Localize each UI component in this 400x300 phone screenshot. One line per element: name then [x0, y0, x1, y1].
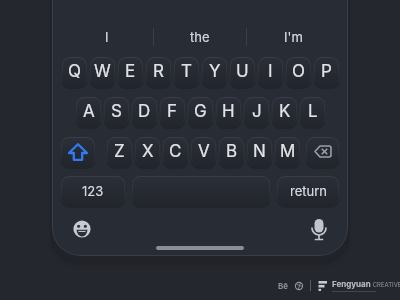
button[interactable]: B — [219, 137, 244, 166]
staticText: G — [194, 101, 207, 122]
staticText: Y — [209, 61, 221, 82]
button[interactable]: J — [244, 97, 269, 126]
staticText: P — [321, 61, 332, 82]
button[interactable] — [306, 137, 339, 166]
staticText: N — [253, 141, 266, 162]
staticText: Q — [68, 61, 81, 82]
button[interactable]: O — [286, 57, 311, 86]
staticText: K — [279, 101, 291, 122]
staticText: 123 — [82, 183, 104, 199]
button[interactable]: K — [272, 97, 297, 126]
staticText: Bē — [278, 281, 289, 291]
staticText: U — [236, 61, 249, 82]
button[interactable]: F — [160, 97, 185, 126]
button[interactable]: R — [146, 57, 171, 86]
staticText: the — [190, 29, 210, 45]
button[interactable]: V — [191, 137, 216, 166]
staticText: I — [105, 29, 109, 45]
button[interactable]: 123 — [61, 176, 125, 205]
button[interactable] — [61, 137, 95, 166]
staticText: H — [222, 101, 235, 122]
button[interactable]: M — [275, 137, 300, 166]
button[interactable]: return — [277, 176, 339, 205]
button[interactable]: P — [314, 57, 339, 86]
button[interactable] — [310, 217, 328, 243]
staticText: L — [308, 101, 318, 122]
staticText: R — [153, 61, 164, 82]
staticText: J — [252, 101, 262, 122]
button[interactable] — [132, 176, 270, 205]
staticText: M — [280, 141, 296, 162]
staticText: S — [111, 101, 122, 122]
staticText: W — [94, 61, 111, 82]
button[interactable]: Y — [202, 57, 227, 86]
button[interactable]: G — [188, 97, 213, 126]
staticText: F — [167, 101, 178, 122]
staticText: Z — [114, 141, 125, 162]
button[interactable]: I — [60, 27, 153, 47]
button[interactable]: Q — [62, 57, 87, 86]
staticText: D — [138, 101, 151, 122]
button[interactable]: A — [76, 97, 101, 126]
button[interactable]: I — [258, 57, 283, 86]
staticText: Fengyuan — [332, 279, 371, 289]
button[interactable]: D — [132, 97, 157, 126]
button[interactable]: W — [90, 57, 115, 86]
button[interactable] — [72, 219, 92, 239]
staticText: B — [226, 141, 238, 162]
staticText: T — [181, 61, 192, 82]
staticText: E — [125, 61, 136, 82]
staticText: C — [169, 141, 182, 162]
button[interactable]: X — [135, 137, 160, 166]
staticText: O — [292, 61, 305, 82]
button[interactable]: E — [118, 57, 143, 86]
button[interactable]: the — [154, 27, 246, 47]
button[interactable]: Z — [107, 137, 132, 166]
staticText: V — [198, 141, 210, 162]
staticText: A — [83, 101, 95, 122]
button[interactable]: H — [216, 97, 241, 126]
staticText: I'm — [284, 29, 303, 45]
button[interactable]: L — [300, 97, 325, 126]
staticText: I — [268, 61, 273, 82]
button[interactable]: C — [163, 137, 188, 166]
button[interactable]: S — [104, 97, 129, 126]
staticText: CREATIVE — [371, 281, 400, 288]
button[interactable]: I'm — [247, 27, 340, 47]
staticText: X — [142, 141, 154, 162]
button[interactable]: T — [174, 57, 199, 86]
button[interactable]: N — [247, 137, 272, 166]
button[interactable]: U — [230, 57, 255, 86]
staticText: return — [290, 183, 327, 199]
